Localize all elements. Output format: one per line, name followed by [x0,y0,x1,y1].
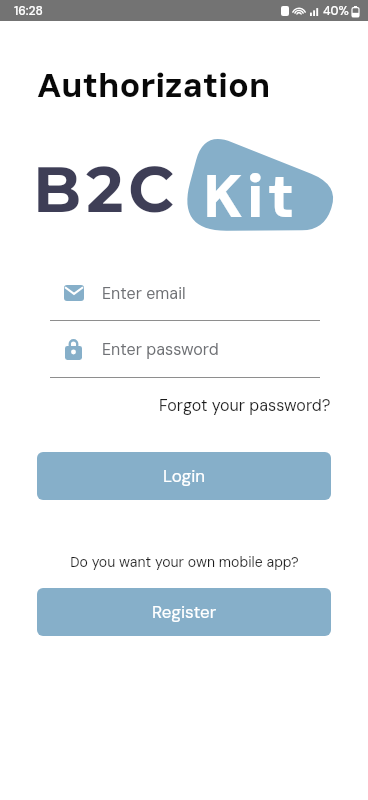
button[interactable]: Password [50,336,320,378]
staticText: Login [163,465,206,487]
other: Email [64,285,84,301]
staticText: Enter password [102,339,219,360]
button[interactable]: Register [37,588,331,636]
button[interactable]: Forgot your password? [159,392,331,419]
other: Password [65,339,82,360]
button[interactable]: Login [37,452,331,500]
staticText: Do you want your own mobile app? [70,553,299,571]
staticText: 16:28 [14,3,43,19]
staticText: B2C [33,151,179,228]
staticText: Authorization [37,63,271,107]
staticText: Enter email [102,283,186,304]
staticText: Register [152,601,217,623]
staticText: 40% [323,3,349,19]
button[interactable]: Email [50,280,320,321]
staticText: Kit [203,157,299,235]
